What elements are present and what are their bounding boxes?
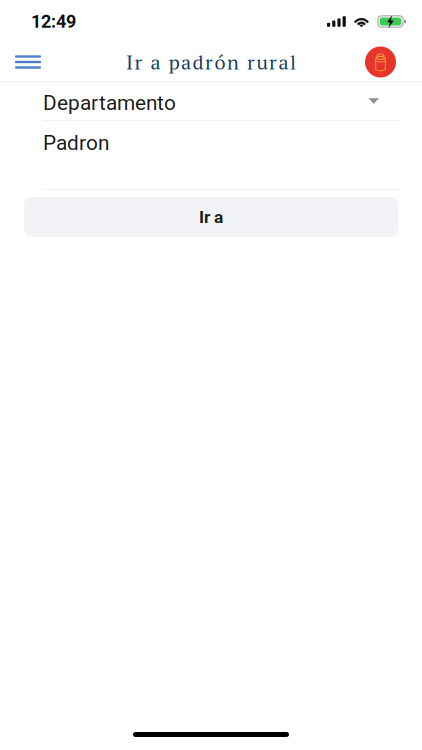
staticText: Padron	[43, 131, 109, 155]
button[interactable]: Padron	[0, 121, 422, 161]
button[interactable]: Menú	[0, 41, 54, 82]
staticText: Departamento	[43, 91, 176, 115]
button[interactable]: Tarros	[353, 40, 422, 83]
staticText: Ir a	[199, 207, 223, 227]
button[interactable]: Ir a	[24, 197, 398, 237]
button[interactable]: Departamento	[0, 82, 422, 121]
staticText: Ir a padrón rural	[126, 49, 296, 75]
staticText: 12:49	[31, 11, 76, 32]
